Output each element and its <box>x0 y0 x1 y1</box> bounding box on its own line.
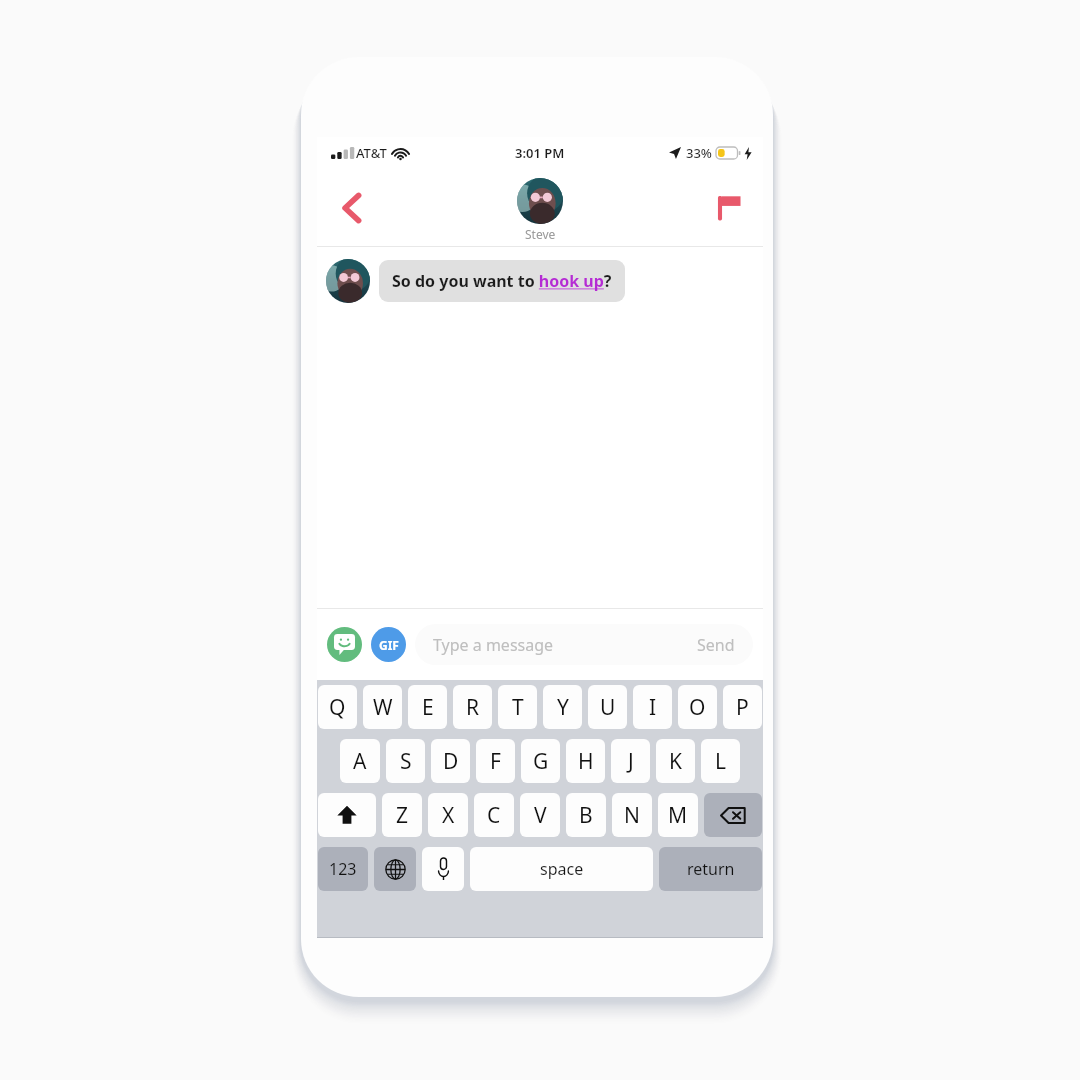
staticText: Z <box>396 801 409 830</box>
button[interactable]: Delete <box>704 793 762 837</box>
staticText: D <box>443 747 459 776</box>
staticText: H <box>578 747 594 776</box>
button[interactable]: E <box>408 685 447 729</box>
button[interactable]: D <box>431 739 470 783</box>
staticText: A <box>353 747 367 776</box>
staticText: J <box>628 747 634 776</box>
button[interactable]: W <box>363 685 402 729</box>
staticText: K <box>669 747 682 776</box>
staticText: N <box>624 801 640 830</box>
staticText: V <box>534 801 547 830</box>
staticText: O <box>689 693 706 722</box>
staticText: I <box>649 693 657 722</box>
staticText: Type a message <box>433 634 554 656</box>
button[interactable]: Shift <box>318 793 376 837</box>
button[interactable]: So do you want to hook up? <box>379 260 625 302</box>
button[interactable]: R <box>453 685 492 729</box>
staticText: 33% <box>686 144 712 162</box>
button[interactable]: Z <box>382 793 422 837</box>
button[interactable]: N <box>612 793 652 837</box>
button[interactable]: T <box>498 685 537 729</box>
staticText: U <box>600 693 616 722</box>
button[interactable]: I <box>633 685 672 729</box>
button[interactable]: X <box>428 793 468 837</box>
button[interactable]: GIF <box>371 627 406 662</box>
button[interactable]: M <box>658 793 698 837</box>
staticText: AT&T <box>356 144 387 162</box>
button[interactable]: Report <box>705 184 753 232</box>
button[interactable]: Stickers <box>327 627 362 662</box>
staticText: S <box>400 747 412 776</box>
button[interactable]: S <box>386 739 425 783</box>
button[interactable]: L <box>701 739 740 783</box>
staticText: M <box>668 801 688 830</box>
staticText: F <box>490 747 501 776</box>
staticText: 3:01 PM <box>515 144 565 162</box>
staticText: W <box>373 693 393 722</box>
staticText: C <box>487 801 501 830</box>
button[interactable]: F <box>476 739 515 783</box>
button[interactable]: Type a message <box>415 624 753 665</box>
staticText: P <box>736 693 749 722</box>
button[interactable]: K <box>656 739 695 783</box>
staticText: space <box>540 858 584 880</box>
button[interactable]: B <box>566 793 606 837</box>
button[interactable]: P <box>723 685 762 729</box>
button[interactable]: Dictate <box>422 847 464 891</box>
button[interactable]: A <box>340 739 380 783</box>
button[interactable]: Q <box>318 685 357 729</box>
button[interactable]: U <box>588 685 627 729</box>
staticText: GIF <box>379 637 399 653</box>
staticText: Steve <box>525 226 556 242</box>
button[interactable]: space <box>470 847 653 891</box>
staticText: B <box>579 801 593 830</box>
button[interactable]: Change keyboard <box>374 847 416 891</box>
staticText: return <box>687 858 735 880</box>
staticText: Send <box>697 634 735 656</box>
staticText: X <box>442 801 455 830</box>
staticText: 123 <box>329 858 357 880</box>
button[interactable]: C <box>474 793 514 837</box>
staticText: E <box>422 693 434 722</box>
staticText: L <box>715 747 727 776</box>
button[interactable]: Y <box>543 685 582 729</box>
button[interactable]: G <box>521 739 560 783</box>
staticText: G <box>533 747 549 776</box>
staticText: Y <box>557 693 569 722</box>
button[interactable]: J <box>611 739 650 783</box>
staticText: T <box>512 693 524 722</box>
button[interactable]: return <box>659 847 762 891</box>
button[interactable]: Steve <box>517 178 563 242</box>
staticText: Q <box>329 693 346 722</box>
button[interactable]: 123 <box>318 847 368 891</box>
staticText: R <box>466 693 480 722</box>
button[interactable]: H <box>566 739 605 783</box>
button[interactable]: O <box>678 685 717 729</box>
button[interactable]: Back <box>325 182 377 234</box>
button[interactable]: V <box>520 793 560 837</box>
staticText: So do you want to hook up? <box>392 270 612 292</box>
